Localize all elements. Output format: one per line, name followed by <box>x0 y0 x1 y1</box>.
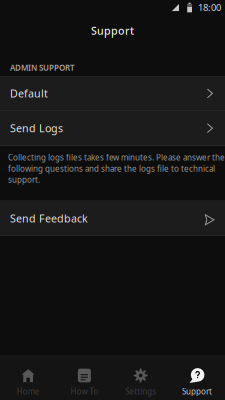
staticText: Settings <box>125 386 156 397</box>
button[interactable]: Support <box>169 355 225 400</box>
staticText: How To <box>70 386 98 397</box>
button[interactable]: Send Logs <box>0 111 225 145</box>
staticText: ADMIN SUPPORT <box>10 62 75 73</box>
staticText: Send Feedback <box>10 211 88 225</box>
button[interactable]: Settings <box>112 355 169 400</box>
button[interactable]: Home <box>0 355 56 400</box>
button[interactable]: Send Feedback <box>0 201 225 235</box>
button[interactable]: How To <box>56 355 112 400</box>
button[interactable]: Default <box>0 77 225 110</box>
staticText: Send Logs <box>10 121 63 135</box>
staticText: Default <box>10 86 48 101</box>
staticText: Support <box>91 23 134 38</box>
staticText: Support <box>182 386 212 397</box>
staticText: 18:00 <box>198 1 221 14</box>
staticText: Home <box>17 386 40 397</box>
staticText: Collecting logs files takes few minutes.… <box>8 152 225 185</box>
